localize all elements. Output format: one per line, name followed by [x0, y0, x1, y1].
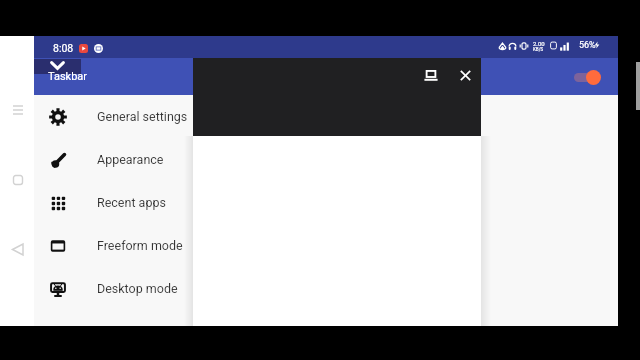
- button[interactable]: General settings: [34, 95, 618, 138]
- staticText: Taskbar: [48, 70, 88, 83]
- staticText: Freeform mode: [97, 238, 183, 253]
- button[interactable]: Desktop mode: [420, 65, 438, 83]
- button[interactable]: Freeform mode: [34, 224, 618, 267]
- button[interactable]: Recent apps: [8, 100, 28, 120]
- button[interactable]: Recent apps: [34, 181, 618, 224]
- staticText: 8:08: [53, 42, 74, 54]
- button[interactable]: Home: [8, 169, 28, 189]
- staticText: General settings: [97, 109, 188, 124]
- staticText: 2.00: [533, 40, 545, 47]
- staticText: Desktop mode: [97, 281, 178, 296]
- staticText: 56%: [579, 40, 596, 51]
- button[interactable]: Collapse: [50, 61, 65, 70]
- staticText: Recent apps: [97, 195, 166, 210]
- button[interactable]: Desktop mode: [34, 267, 618, 310]
- button[interactable]: Close: [456, 65, 474, 83]
- button[interactable]: Appearance: [34, 138, 618, 181]
- staticText: KB/S: [533, 47, 544, 52]
- button[interactable]: Toggle taskbar: [568, 66, 604, 88]
- staticText: Appearance: [97, 152, 164, 167]
- button[interactable]: Back: [8, 238, 28, 258]
